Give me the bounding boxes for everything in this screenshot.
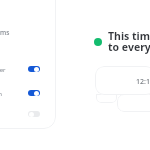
button[interactable]: Location: [0, 87, 38, 100]
button[interactable]: Reminder: [0, 63, 38, 76]
staticText: Problems: [0, 28, 10, 37]
button[interactable]: [0, 0, 56, 129]
button[interactable]: [28, 66, 40, 72]
button[interactable]: [117, 94, 150, 112]
button[interactable]: Sound: [0, 108, 38, 121]
staticText: Location: [0, 90, 3, 98]
button[interactable]: [28, 111, 40, 117]
staticText: 12:1: [136, 77, 150, 87]
other: Online status: [94, 38, 102, 46]
staticText: to every: [108, 40, 150, 54]
staticText: Reminder: [0, 66, 6, 74]
staticText: This tim: [108, 29, 150, 43]
button[interactable]: [28, 90, 40, 96]
button[interactable]: [95, 66, 150, 95]
